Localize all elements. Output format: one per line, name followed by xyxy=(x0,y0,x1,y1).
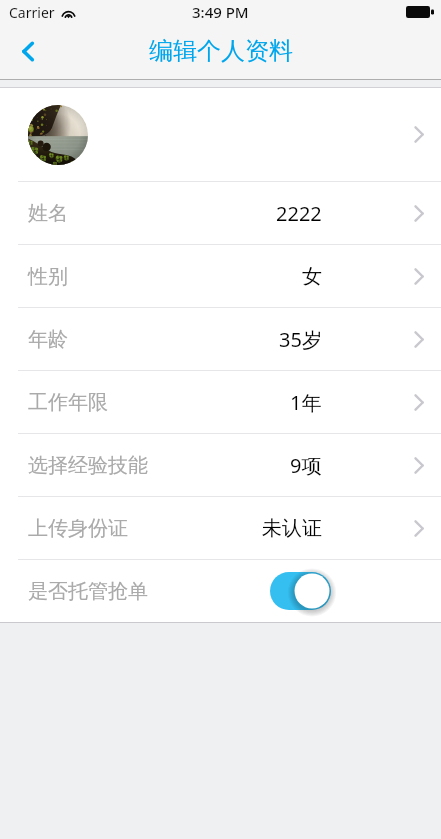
staticText: 未认证 xyxy=(262,516,322,541)
staticText: 姓名 xyxy=(28,201,68,226)
staticText: 上传身份证 xyxy=(28,516,128,541)
button[interactable]: 是否托管抢单 开关 xyxy=(270,572,331,610)
staticText: 选择经验技能 xyxy=(28,453,148,478)
staticText: 3:49 PM xyxy=(192,2,249,22)
staticText: 女 xyxy=(302,264,322,289)
button[interactable]: 工作年限 xyxy=(0,371,441,433)
staticText: 1年 xyxy=(290,389,322,416)
button[interactable]: Back xyxy=(5,25,51,77)
button[interactable]: 年龄 xyxy=(0,308,441,370)
staticText: Carrier xyxy=(9,3,55,22)
staticText: 年龄 xyxy=(28,327,68,352)
staticText: 性别 xyxy=(28,264,68,289)
staticText: 35岁 xyxy=(279,326,322,353)
staticText: 是否托管抢单 xyxy=(28,579,148,604)
button[interactable]: 上传身份证 xyxy=(0,497,441,559)
staticText: 9项 xyxy=(290,452,322,479)
button[interactable]: 选择经验技能 xyxy=(0,434,441,496)
staticText: 编辑个人资料 xyxy=(149,36,293,66)
button[interactable]: 姓名 xyxy=(0,182,441,244)
button[interactable] xyxy=(0,88,441,181)
staticText: 工作年限 xyxy=(28,390,108,415)
staticText: 2222 xyxy=(276,200,322,227)
button[interactable]: 性别 xyxy=(0,245,441,307)
